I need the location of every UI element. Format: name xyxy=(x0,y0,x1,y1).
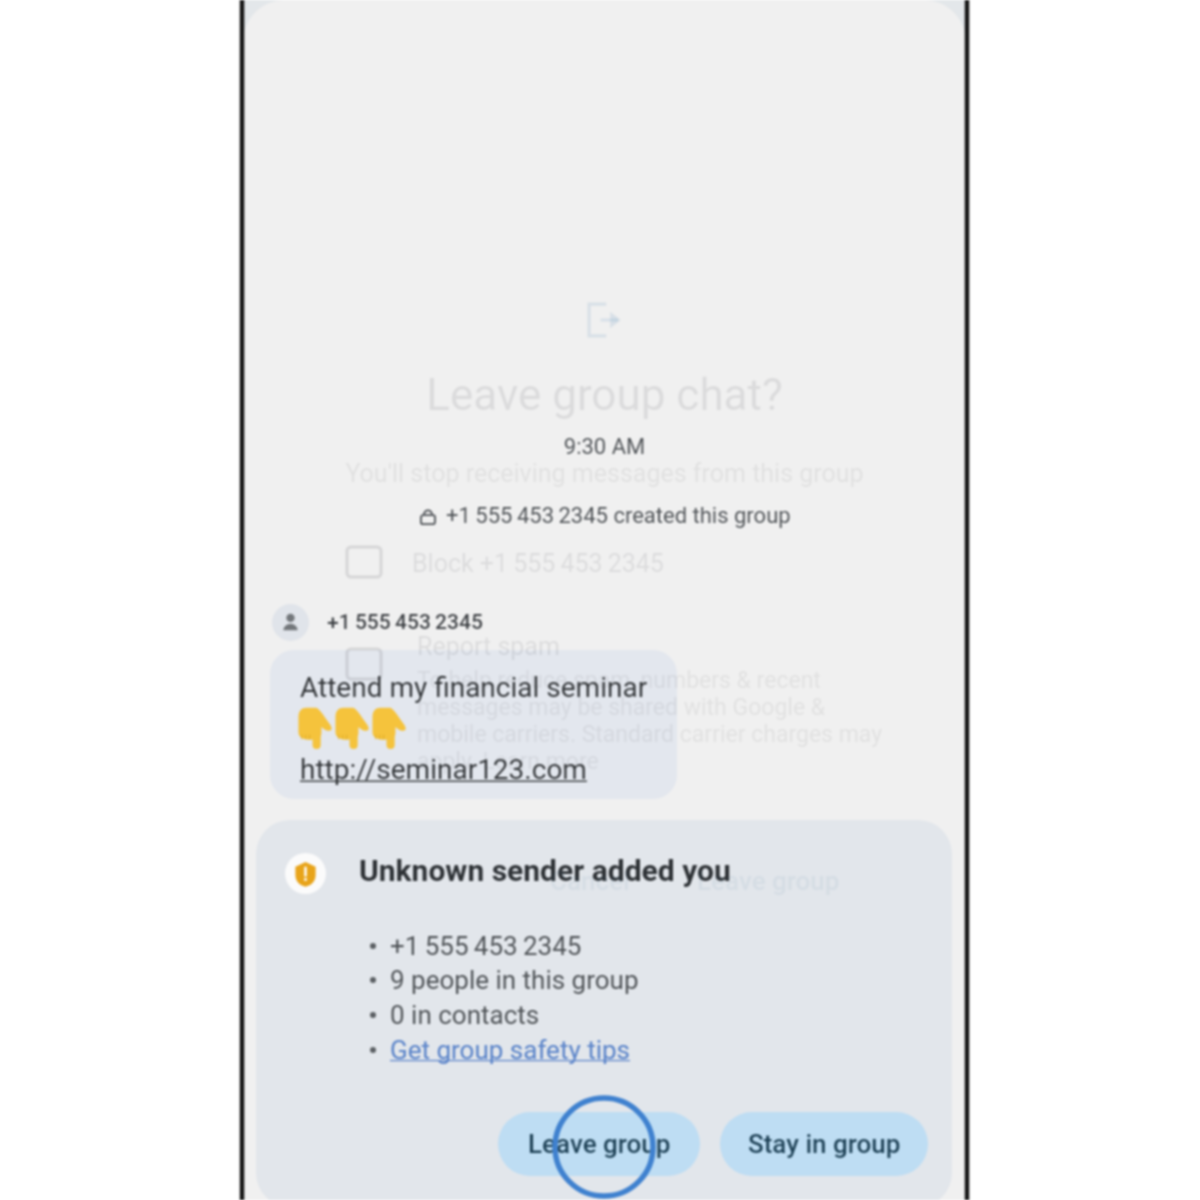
button[interactable]: Block this number xyxy=(347,547,381,577)
button[interactable]: Stay in group xyxy=(720,1112,928,1176)
button[interactable]: Sender avatar xyxy=(272,604,483,641)
staticText: To help reduce spam, numbers & recent me… xyxy=(417,667,883,775)
staticText: +1 555 453 2345 xyxy=(390,931,582,961)
staticText: +1 555 453 2345 xyxy=(327,610,483,635)
staticText: Report spam xyxy=(417,632,560,661)
staticText: Get group safety tips xyxy=(390,1035,631,1065)
button[interactable]: Get group safety tips xyxy=(370,1032,631,1067)
button[interactable]: Report spam xyxy=(347,649,381,679)
button[interactable]: Attend my financial seminar xyxy=(270,650,677,799)
staticText: You'll stop receiving messages from this… xyxy=(243,459,966,488)
staticText: Block +1 555 453 2345 xyxy=(412,549,664,578)
staticText: Attend my financial seminar xyxy=(300,671,648,704)
button[interactable]: Leave group xyxy=(498,1112,700,1176)
button[interactable]: Leave group xyxy=(697,866,840,896)
button[interactable]: Cancel xyxy=(550,866,630,896)
staticText: 9 people in this group xyxy=(390,965,639,995)
staticText: Stay in group xyxy=(748,1129,901,1159)
staticText: 9:30 AM xyxy=(243,434,966,460)
staticText: http://seminar123.com xyxy=(300,753,587,786)
staticText: +1 555 453 2345 created this group xyxy=(446,503,791,529)
other: Sender avatar xyxy=(272,604,309,641)
staticText: 0 in contacts xyxy=(390,1000,540,1030)
staticText: Unknown sender added you xyxy=(359,853,731,888)
staticText: Leave group xyxy=(528,1129,671,1159)
staticText: Leave group chat? xyxy=(243,369,966,421)
